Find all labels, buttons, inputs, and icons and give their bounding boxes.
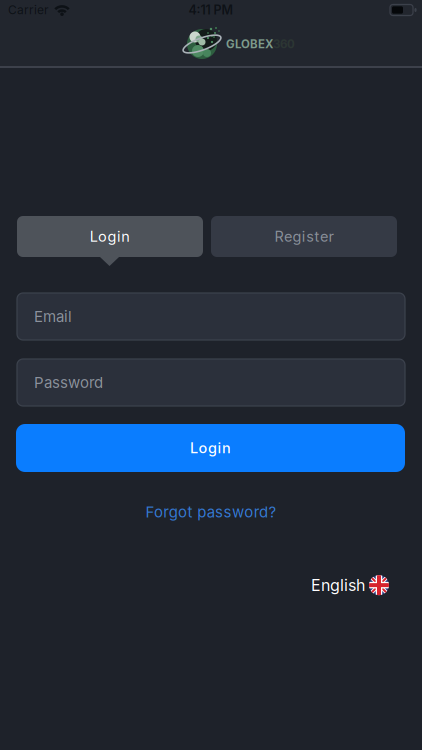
button[interactable]: Register bbox=[211, 216, 397, 257]
staticText: GLOBEX bbox=[226, 37, 273, 51]
button[interactable]: Email bbox=[17, 293, 405, 340]
staticText: Forgot password? bbox=[145, 503, 276, 521]
staticText: Carrier bbox=[8, 3, 49, 17]
staticText: Login bbox=[190, 439, 231, 457]
staticText: Password bbox=[34, 373, 103, 391]
staticText: English bbox=[311, 575, 365, 595]
button[interactable]: Login bbox=[17, 216, 203, 257]
button[interactable]: Password bbox=[17, 359, 405, 406]
staticText: Register bbox=[275, 228, 333, 245]
staticText: 4:11 PM bbox=[188, 2, 233, 17]
button[interactable]: Login bbox=[16, 424, 405, 472]
staticText: 360 bbox=[273, 37, 295, 51]
button[interactable]: English bbox=[311, 575, 389, 595]
button[interactable]: Forgot password? bbox=[145, 503, 276, 521]
staticText: Email bbox=[34, 307, 72, 325]
staticText: Login bbox=[90, 228, 130, 245]
